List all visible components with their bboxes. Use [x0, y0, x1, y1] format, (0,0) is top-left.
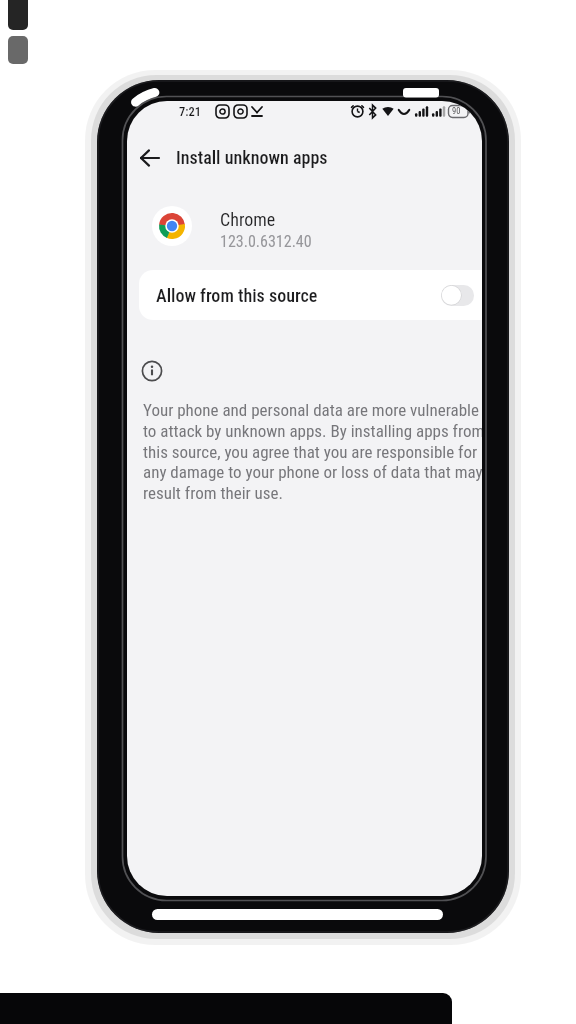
button[interactable]: Allow from this source [139, 270, 482, 320]
staticText: Allow from this source [156, 285, 318, 306]
staticText: 7:21 [179, 104, 202, 119]
staticText: 90 [452, 106, 461, 116]
staticText: Install unknown apps [176, 147, 328, 168]
button[interactable] [441, 285, 474, 306]
staticText: this source, you agree that you are resp… [143, 442, 478, 462]
button[interactable] [135, 143, 465, 173]
staticText: any damage to your phone or loss of data… [143, 462, 482, 482]
staticText: Chrome [220, 209, 276, 230]
staticText: 123.0.6312.40 [220, 232, 312, 251]
staticText: result from their use. [143, 483, 284, 503]
staticText: Your phone and personal data are more vu… [143, 400, 479, 420]
staticText: to attack by unknown apps. By installing… [143, 421, 482, 441]
